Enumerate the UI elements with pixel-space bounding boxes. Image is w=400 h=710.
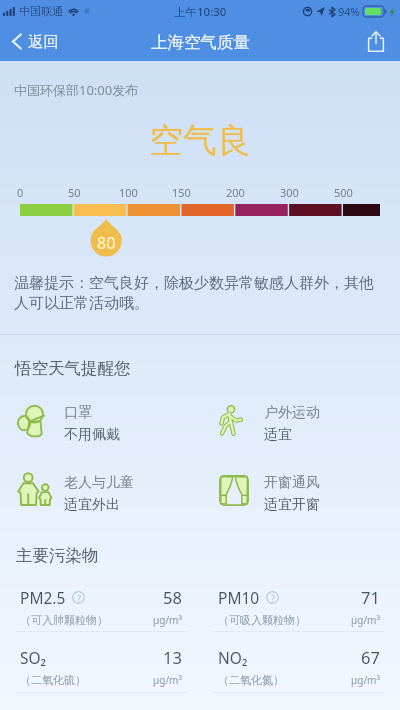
staticText: 67 [361, 646, 380, 668]
staticText: 150 [172, 185, 191, 200]
button[interactable]: SO₂ [15, 646, 187, 693]
staticText: NO₂ [218, 647, 248, 668]
staticText: ? [271, 592, 275, 604]
staticText: 温馨提示：空气良好，除极少数异常敏感人群外，其他 人可以正常活动哦。 [14, 274, 374, 312]
staticText: 适宜 [264, 426, 292, 444]
staticText: （可入肺颗粒物） [20, 613, 108, 627]
staticText: 返回 [28, 32, 59, 52]
staticText: 主要污染物 [16, 545, 99, 566]
button[interactable]: 口罩 [14, 403, 194, 445]
staticText: ? [77, 592, 81, 604]
button[interactable]: Share [354, 22, 398, 61]
staticText: 适宜开窗 [264, 496, 320, 514]
staticText: 开窗通风 [264, 474, 320, 492]
button[interactable]: 开窗通风 [206, 473, 386, 515]
staticText: 适宜外出 [64, 496, 120, 514]
staticText: 71 [361, 586, 380, 608]
staticText: 中国联通 [19, 4, 63, 18]
staticText: 空气良 [149, 119, 251, 162]
staticText: µg/m³ [153, 613, 182, 627]
staticText: （二氧化硫） [20, 673, 86, 687]
staticText: 200 [226, 185, 245, 200]
staticText: µg/m³ [351, 673, 380, 687]
staticText: 中国环保部10:00发布 [14, 81, 139, 99]
staticText: 80 [97, 232, 116, 254]
staticText: 100 [119, 185, 138, 200]
staticText: （可吸入颗粒物） [218, 613, 306, 627]
button[interactable]: 返回 [12, 22, 59, 61]
staticText: 300 [280, 185, 299, 200]
staticText: 口罩 [64, 404, 92, 422]
staticText: 500 [334, 185, 353, 200]
staticText: 户外运动 [264, 404, 320, 422]
staticText: 13 [163, 646, 182, 668]
staticText: （二氧化氮） [218, 673, 284, 687]
button[interactable]: 户外运动 [206, 403, 386, 445]
staticText: PM10 [218, 587, 260, 608]
staticText: µg/m³ [153, 673, 182, 687]
staticText: 50 [68, 185, 81, 200]
staticText: PM2.5 [20, 587, 66, 608]
button[interactable]: 老人与儿童 [14, 473, 194, 515]
staticText: SO₂ [20, 647, 47, 668]
staticText: 不用佩戴 [64, 426, 120, 444]
staticText: 0 [17, 185, 24, 200]
staticText: µg/m³ [351, 613, 380, 627]
staticText: 老人与儿童 [64, 474, 134, 492]
staticText: 58 [163, 586, 182, 608]
staticText: 悟空天气提醒您 [15, 358, 131, 379]
button[interactable]: PM10 [213, 586, 385, 632]
button[interactable]: PM2.5 [15, 586, 187, 632]
button[interactable]: NO₂ [213, 646, 385, 693]
staticText: 上午10:30 [174, 4, 227, 20]
staticText: 上海空气质量 [151, 32, 250, 53]
staticText: 94% [338, 4, 360, 19]
